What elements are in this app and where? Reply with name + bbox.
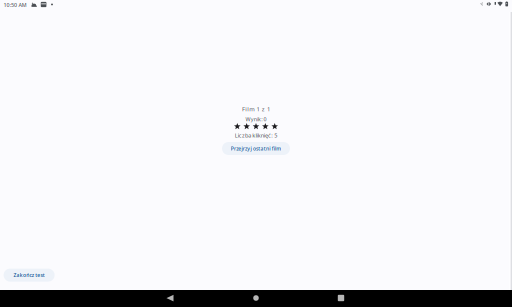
staticText: Film 1 z 1 (242, 105, 270, 113)
staticText: Liczba kliknięć: 5 (235, 131, 277, 139)
staticText: Wynik: 0 (246, 115, 266, 123)
staticText: Zakończ test (13, 272, 45, 278)
button[interactable]: Przejrzyj ostatni film (222, 142, 290, 155)
button[interactable]: Zakończ test (4, 269, 55, 282)
button[interactable]: Back (166, 295, 173, 301)
button[interactable]: Home (253, 295, 259, 301)
staticText: 10:50 AM (3, 1, 27, 8)
staticText: Przejrzyj ostatni film (231, 145, 281, 152)
